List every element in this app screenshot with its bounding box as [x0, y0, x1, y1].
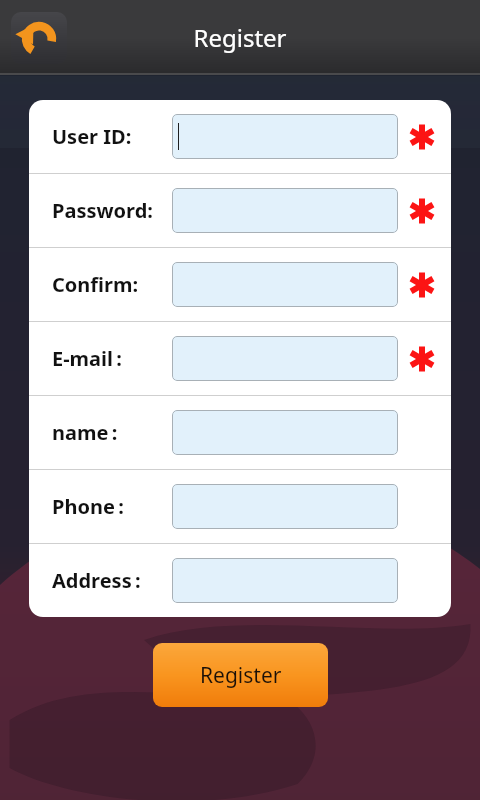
button[interactable]: Phone :	[29, 470, 451, 543]
button[interactable]: Register	[153, 643, 328, 707]
staticText: User ID:	[52, 123, 132, 150]
staticText: Password:	[52, 197, 153, 224]
button[interactable]: name :	[29, 396, 451, 469]
staticText: name :	[52, 419, 118, 446]
button[interactable]: Back	[11, 12, 67, 64]
button[interactable]: User ID:	[29, 100, 451, 173]
button[interactable]: E-mail :	[29, 322, 451, 395]
staticText: Register	[193, 21, 287, 54]
staticText: E-mail :	[52, 345, 122, 372]
staticText: Phone :	[52, 493, 124, 520]
staticText: Address :	[52, 567, 141, 594]
button[interactable]: Address :	[29, 544, 451, 617]
staticText: Confirm:	[52, 271, 139, 298]
button[interactable]: Confirm:	[29, 248, 451, 321]
button[interactable]: Password:	[29, 174, 451, 247]
staticText: Register	[200, 661, 282, 690]
